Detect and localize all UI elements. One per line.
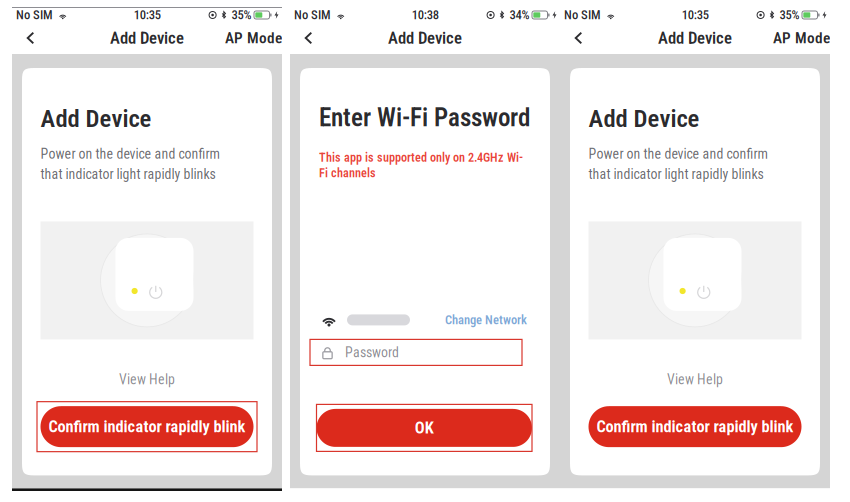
staticText: 10:35 [682,8,709,22]
button[interactable]: Change Network [445,313,527,327]
staticText: Power on the device and confirm [40,146,219,162]
button[interactable]: Back [296,24,320,52]
staticText: No SIM [564,8,601,22]
staticText: View Help [667,371,723,388]
button[interactable]: Confirm indicator rapidly blink [40,406,253,447]
staticText: AP Mode [773,29,830,47]
button[interactable]: Password [310,339,522,365]
staticText: Add Device [110,28,184,48]
staticText: Power on the device and confirm [588,146,767,162]
staticText: Enter Wi-Fi Password [319,103,530,132]
staticText: that indicator light rapidly blinks [40,166,215,182]
staticText: Password [345,344,399,361]
staticText: Add Device [388,28,462,48]
staticText: No SIM [294,8,331,22]
staticText: OK [415,418,434,437]
staticText: 34% [509,8,529,22]
staticText: 35% [779,8,799,22]
staticText: Fi channels [319,166,376,180]
staticText: Add Device [40,104,151,133]
button[interactable]: AP Mode [225,24,282,52]
staticText: 10:35 [134,8,161,22]
staticText: This app is supported only on 2.4GHz Wi- [319,150,523,165]
button[interactable]: OK [316,409,532,447]
staticText: Change Network [445,313,527,327]
staticText: Add Device [588,104,699,133]
staticText: 10:38 [412,8,439,22]
staticText: No SIM [16,8,53,22]
staticText: View Help [119,371,175,388]
staticText: AP Mode [225,29,282,47]
staticText: Add Device [658,28,732,48]
staticText: 35% [231,8,251,22]
button[interactable]: Confirm indicator rapidly blink [588,406,801,447]
staticText: Confirm indicator rapidly blink [48,417,245,436]
staticText: that indicator light rapidly blinks [588,166,763,182]
button[interactable]: Back [566,24,590,52]
staticText: Confirm indicator rapidly blink [596,417,793,436]
button[interactable]: Back [18,24,42,52]
button[interactable]: AP Mode [773,24,830,52]
